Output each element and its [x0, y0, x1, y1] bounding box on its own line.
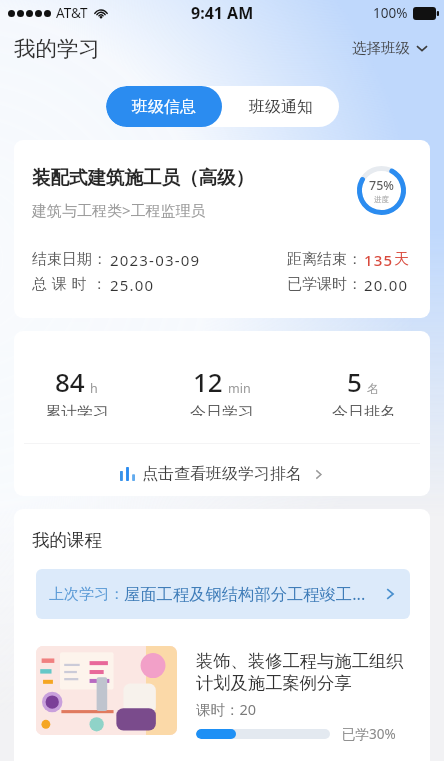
- staticText: 装配式建筑施工员（高级）: [32, 166, 254, 189]
- staticText: 距离结束：: [287, 250, 362, 269]
- staticText: 上次学习：: [49, 585, 124, 604]
- staticText: 班级通知: [249, 97, 313, 117]
- staticText: 屋面工程及钢结构部分工程竣工...: [124, 583, 379, 605]
- staticText: 2023-03-09: [110, 250, 201, 270]
- staticText: 我的学习: [14, 35, 100, 62]
- staticText: 我的课程: [32, 529, 102, 551]
- staticText: 选择班级: [352, 39, 410, 57]
- staticText: 9:41 AM: [191, 2, 254, 24]
- staticText: 20.00: [364, 275, 409, 295]
- button[interactable]: 选择班级: [350, 33, 430, 63]
- button[interactable]: 班级信息: [106, 86, 222, 127]
- staticText: 名: [367, 381, 380, 397]
- button[interactable]: 上次学习：: [36, 569, 410, 619]
- staticText: 点击查看班级学习排名: [142, 464, 302, 484]
- staticText: 100%: [373, 4, 408, 22]
- staticText: 总课时：: [32, 275, 112, 294]
- staticText: 75%: [369, 177, 394, 194]
- button[interactable]: 班级通知: [222, 86, 339, 127]
- staticText: 建筑与工程类>工程监理员: [32, 200, 206, 220]
- staticText: 已学30%: [342, 725, 396, 743]
- staticText: 今日排名: [332, 403, 396, 416]
- staticText: AT&T: [56, 4, 88, 22]
- staticText: 已学课时：: [287, 275, 362, 294]
- staticText: 5: [347, 364, 362, 399]
- staticText: 结束日期：: [32, 250, 107, 269]
- staticText: 进度: [374, 195, 389, 204]
- staticText: 25.00: [110, 275, 155, 295]
- staticText: 装饰、装修工程与施工组织计划及施工案例分享: [196, 650, 410, 694]
- button[interactable]: 装饰、装修工程与施工组织计划及施工案例分享: [36, 646, 410, 761]
- staticText: min: [228, 380, 251, 397]
- staticText: 84: [55, 364, 85, 399]
- staticText: 课时：20: [196, 699, 257, 719]
- staticText: 累计学习: [45, 403, 109, 416]
- staticText: 天: [394, 250, 409, 269]
- staticText: 今日学习: [190, 403, 254, 416]
- staticText: h: [90, 380, 98, 397]
- staticText: 12: [193, 364, 223, 399]
- staticText: 135: [364, 250, 394, 270]
- button[interactable]: 点击查看班级学习排名: [14, 448, 430, 496]
- staticText: 班级信息: [132, 97, 196, 117]
